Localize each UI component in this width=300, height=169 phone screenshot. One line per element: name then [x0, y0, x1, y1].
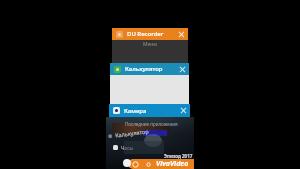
staticText: Калькулятор: [115, 127, 149, 139]
button[interactable]: Record: [123, 159, 131, 167]
staticText: Часы: [121, 145, 134, 152]
button[interactable]: Close: [178, 65, 187, 74]
staticText: Последние приложения: [125, 121, 178, 127]
button[interactable]: Close: [179, 106, 188, 115]
staticText: Эпизод 2017: [164, 153, 193, 159]
button[interactable]: Camera: [132, 161, 139, 168]
staticText: Меню: [143, 41, 158, 48]
button[interactable]: Close: [177, 30, 186, 39]
button[interactable]: Камера: [109, 104, 190, 117]
staticText: VivaVideo: [156, 159, 189, 169]
staticText: Камера: [124, 107, 147, 115]
staticText: DU Recorder: [127, 30, 164, 38]
button[interactable]: DU Recorder: [112, 28, 188, 63]
button[interactable]: Калькулятор: [110, 63, 189, 104]
staticText: Калькулятор: [125, 65, 163, 73]
button[interactable]: Effects: [145, 161, 152, 168]
